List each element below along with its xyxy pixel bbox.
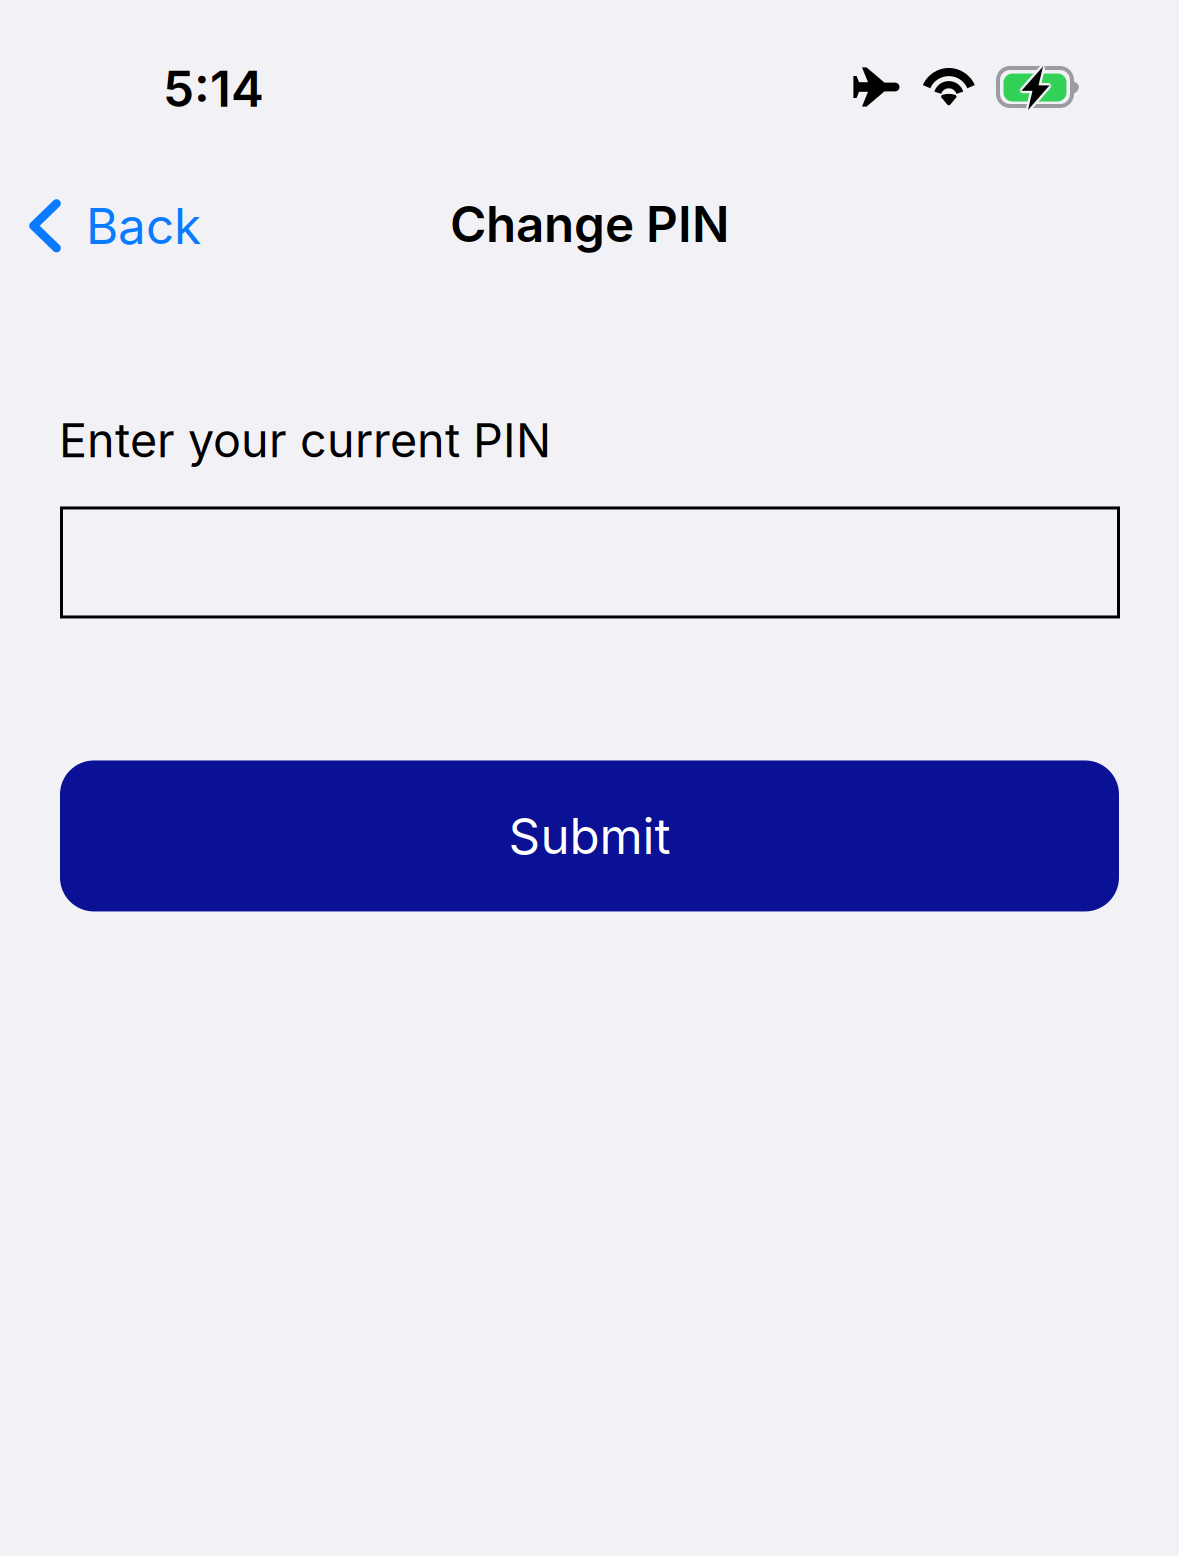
button[interactable]: Submit bbox=[60, 760, 1119, 911]
staticText: 5:14 bbox=[163, 59, 264, 119]
staticText: Back bbox=[86, 196, 201, 256]
button[interactable]: Back bbox=[0, 181, 220, 271]
button[interactable]: Current PIN bbox=[60, 506, 1120, 618]
staticText: Enter your current PIN bbox=[59, 412, 551, 468]
staticText: Submit bbox=[508, 806, 670, 866]
staticText: Change PIN bbox=[450, 194, 729, 254]
